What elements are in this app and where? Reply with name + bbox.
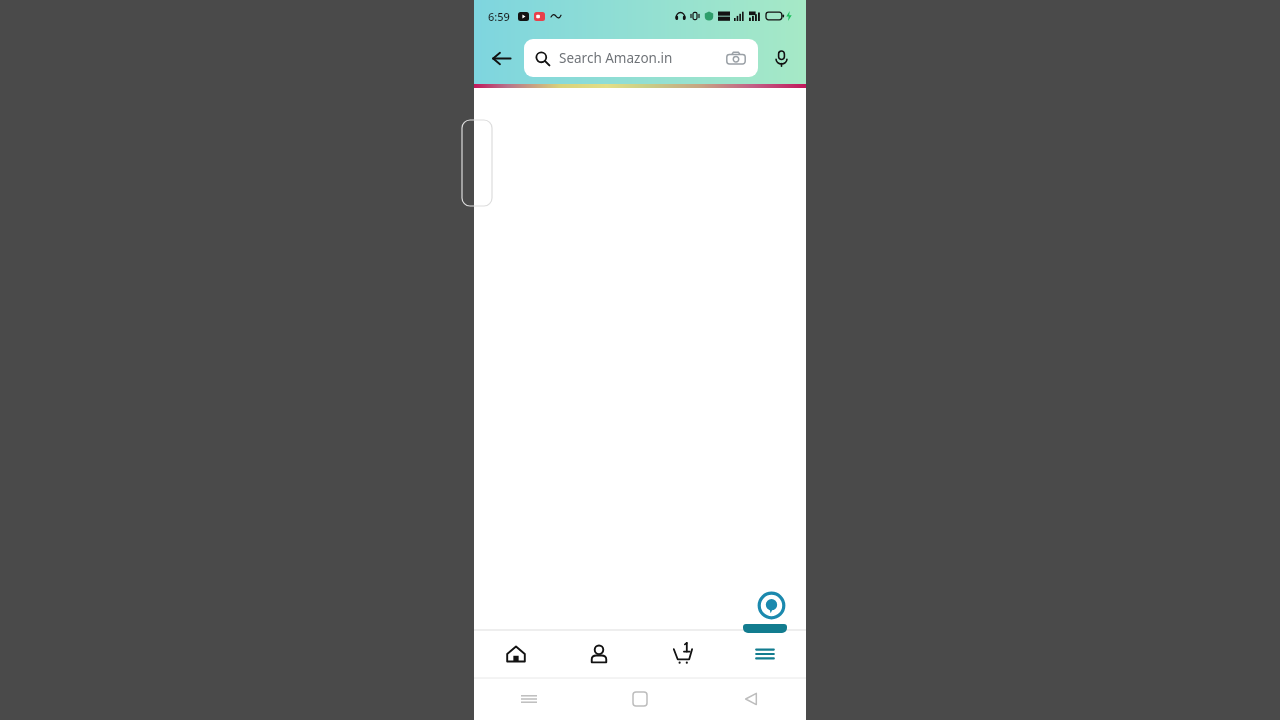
button[interactable]: Voice search (766, 43, 796, 73)
button[interactable]: Home (474, 630, 557, 678)
button[interactable]: Back (695, 678, 806, 720)
button[interactable]: Search Amazon.in (524, 39, 758, 77)
staticText: Search Amazon.in (559, 49, 673, 67)
button[interactable]: Recent apps (474, 678, 584, 720)
button[interactable]: Search by camera (725, 47, 747, 69)
button[interactable]: Alexa (750, 584, 792, 626)
button[interactable]: Home (584, 678, 695, 720)
button[interactable]: Menu (723, 630, 806, 678)
button[interactable]: Back (484, 41, 518, 75)
staticText: 6:59 (488, 9, 510, 24)
button[interactable]: Cart, 1 item (640, 630, 723, 678)
button[interactable]: Account (557, 630, 640, 678)
